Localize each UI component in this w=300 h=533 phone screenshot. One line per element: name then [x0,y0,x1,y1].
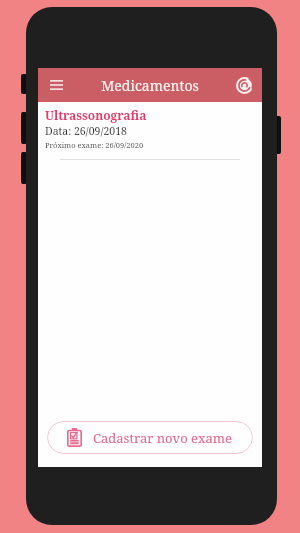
staticText: Ultrassonografia [45,107,147,123]
button[interactable]: App logo [232,73,256,97]
button[interactable]: Cadastrar novo exame [47,421,253,454]
staticText: Medicamentos [101,76,199,95]
staticText: Próximo exame: 26/09/2020 [45,140,144,150]
button[interactable]: Ultrassonografia [38,107,262,160]
staticText: Cadastrar novo exame [93,429,233,447]
staticText: Data: 26/09/2018 [45,124,127,138]
button[interactable]: Open navigation menu [43,72,69,98]
